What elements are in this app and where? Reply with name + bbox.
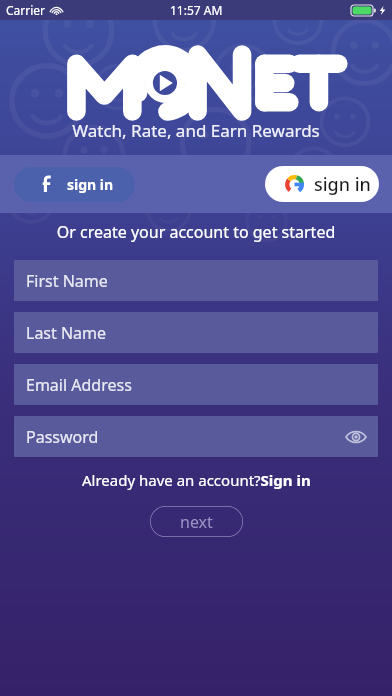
button[interactable]: sign in — [14, 167, 135, 202]
staticText: Or create your account to get started — [0, 221, 392, 243]
staticText: Password — [26, 426, 99, 448]
staticText: Carrier — [6, 2, 46, 18]
other: Show password — [346, 427, 366, 447]
button[interactable]: Already have an account?Sign in — [82, 470, 311, 490]
staticText: First Name — [26, 270, 108, 292]
button[interactable]: next — [150, 506, 243, 537]
staticText: sign in — [314, 172, 371, 197]
staticText: sign in — [67, 175, 114, 194]
button[interactable]: Password — [14, 416, 378, 457]
button[interactable]: Email Address — [14, 364, 378, 405]
staticText: Last Name — [26, 322, 107, 344]
staticText: 11:57 AM — [170, 2, 223, 18]
staticText: Watch, Rate, and Earn Rewards — [0, 119, 392, 142]
staticText: Email Address — [26, 374, 132, 396]
button[interactable]: First Name — [14, 260, 378, 301]
staticText: next — [180, 511, 213, 533]
button[interactable]: Last Name — [14, 312, 378, 353]
button[interactable]: sign in — [265, 166, 379, 202]
